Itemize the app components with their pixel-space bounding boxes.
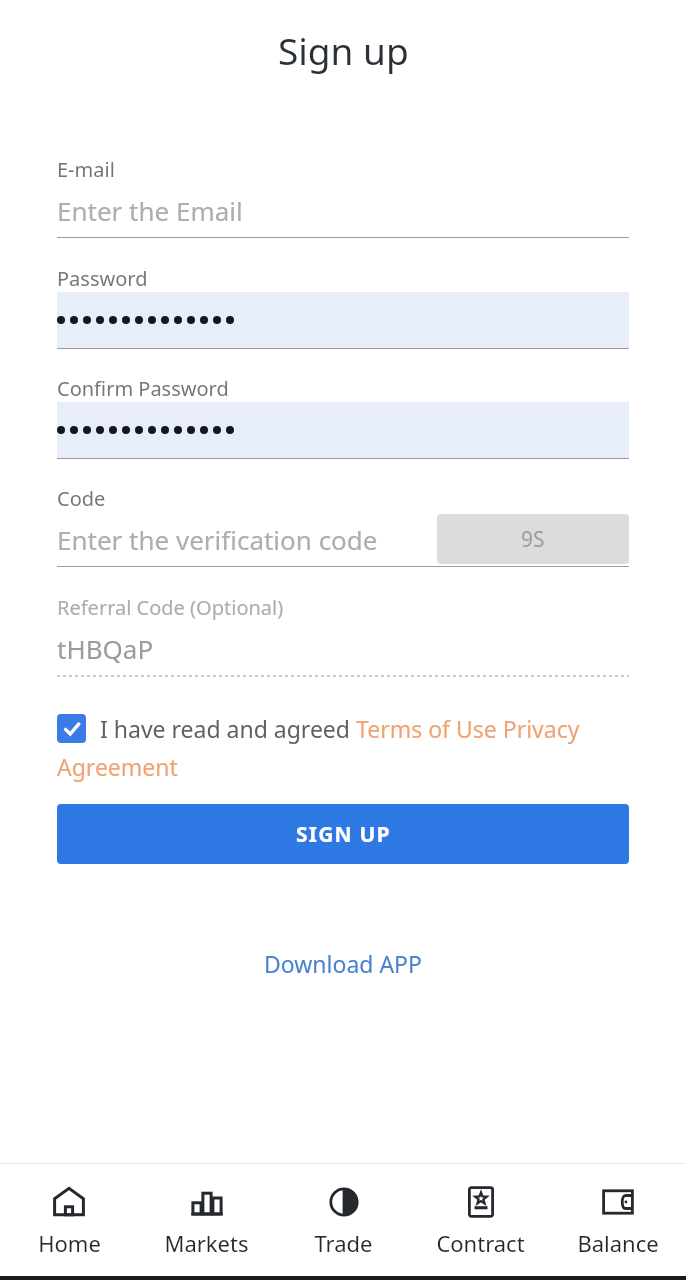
staticText: Confirm Password (57, 375, 229, 402)
button[interactable] (57, 402, 629, 459)
staticText: Download APP (264, 948, 422, 979)
staticText: Home (38, 1228, 101, 1258)
staticText: E-mail (57, 156, 115, 183)
staticText: tHBQaP (57, 631, 154, 666)
staticText: Terms of Use Privacy (356, 713, 580, 744)
button[interactable]: 9S (437, 514, 629, 564)
staticText: I have read and agreed (100, 713, 356, 744)
staticText: Enter the Email (57, 193, 243, 228)
button[interactable]: Trade (275, 1176, 412, 1264)
staticText: Code (57, 485, 106, 512)
button[interactable]: tHBQaP (57, 621, 629, 677)
button[interactable]: Agreement (57, 751, 178, 782)
staticText: Contract (436, 1228, 525, 1258)
staticText: Referral Code (Optional) (57, 594, 284, 621)
button[interactable]: SIGN UP (57, 804, 629, 864)
button[interactable]: Enter the Email (57, 183, 629, 238)
button[interactable]: I have read and agreed (57, 713, 629, 744)
button[interactable]: Enter the verification code (57, 512, 629, 566)
staticText: Password (57, 265, 148, 292)
staticText: SIGN UP (296, 820, 391, 849)
button[interactable]: Home (0, 1176, 138, 1264)
button[interactable]: Markets (138, 1176, 275, 1264)
staticText: Markets (164, 1228, 249, 1258)
staticText: Agreement (57, 751, 178, 782)
staticText: Trade (314, 1228, 373, 1258)
staticText: Sign up (278, 25, 409, 75)
staticText: Enter the verification code (57, 522, 378, 557)
button[interactable] (57, 292, 629, 349)
button[interactable]: Balance (549, 1176, 686, 1264)
staticText: 9S (521, 525, 545, 554)
button[interactable]: Contract (412, 1176, 549, 1264)
staticText: Balance (577, 1228, 659, 1258)
button[interactable]: Download APP (252, 942, 434, 985)
